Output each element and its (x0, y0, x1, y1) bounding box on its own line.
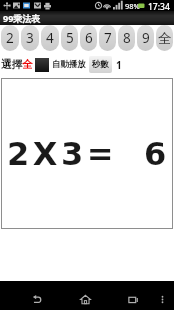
button[interactable]: 2 (1, 25, 19, 51)
staticText: 6 (85, 29, 93, 47)
staticText: 9 (142, 29, 150, 47)
staticText: 5 (66, 29, 74, 47)
button[interactable]: 全 (156, 25, 173, 51)
button[interactable]: 8 (118, 25, 135, 51)
button[interactable]: 7 (99, 25, 116, 51)
staticText: 3 (26, 29, 34, 47)
staticText: 6 (144, 135, 167, 172)
staticText: 全 (22, 58, 33, 71)
staticText: 99乘法表 (3, 12, 41, 24)
staticText: 1 (116, 58, 122, 72)
button[interactable]: 自動播放 checkbox (35, 58, 49, 72)
button[interactable]: 4 (41, 25, 59, 51)
button[interactable]: More options (153, 290, 171, 308)
staticText: 全 (158, 30, 172, 47)
button[interactable]: Back (27, 290, 45, 308)
staticText: 17:34 (148, 1, 170, 12)
button[interactable]: 6 (80, 25, 97, 51)
staticText: 2 (6, 29, 14, 47)
staticText: 4 (46, 29, 54, 47)
staticText: 98% (125, 1, 140, 11)
button[interactable]: 9 (137, 25, 154, 51)
staticText: 秒數 (92, 59, 109, 70)
staticText: 自動播放 (52, 59, 86, 70)
button[interactable]: 選擇 (1, 58, 33, 71)
staticText: 8 (123, 29, 131, 47)
button[interactable]: 3 (21, 25, 39, 51)
button[interactable]: 秒數 (89, 56, 112, 73)
staticText: 2X3= (7, 135, 118, 172)
button[interactable]: Home (76, 290, 94, 308)
button[interactable]: Recents (124, 290, 142, 308)
staticText: 選擇 (1, 58, 22, 71)
staticText: 7 (104, 29, 112, 47)
button[interactable]: 5 (61, 25, 78, 51)
